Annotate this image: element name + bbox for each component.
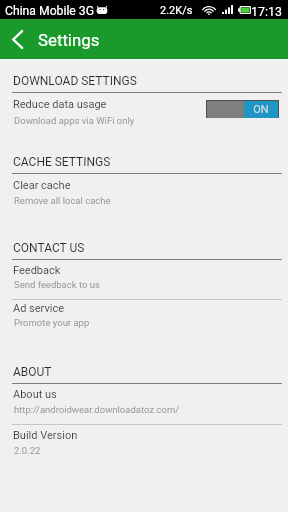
- button[interactable]: Clear cache: [0, 176, 288, 207]
- other: Signal strength: [222, 5, 234, 14]
- staticText: Settings: [38, 30, 100, 50]
- staticText: ON: [253, 103, 269, 116]
- staticText: 2.2K/s: [160, 4, 193, 17]
- staticText: ABOUT: [13, 365, 52, 379]
- button[interactable]: Ad service: [0, 300, 288, 338]
- other: Wi-Fi: [203, 5, 215, 15]
- staticText: 2.0.22: [14, 445, 41, 456]
- staticText: Feedback: [13, 264, 61, 277]
- button[interactable]: Build Version: [0, 424, 288, 462]
- other: Battery full: [238, 6, 251, 14]
- staticText: Build Version: [13, 429, 78, 442]
- staticText: China Mobile 3G: [5, 4, 94, 18]
- button[interactable]: Reduce data usage, on: [206, 100, 279, 118]
- staticText: http://androidwear.downloadatoz.com/: [14, 404, 180, 415]
- staticText: Remove all local cache: [14, 195, 111, 206]
- staticText: Download apps via WiFi only: [14, 115, 135, 126]
- staticText: Ad service: [13, 302, 65, 315]
- button[interactable]: Navigate up: [4, 19, 30, 59]
- staticText: Reduce data usage: [13, 98, 107, 111]
- button[interactable]: Feedback: [0, 261, 288, 299]
- other: Android: [96, 6, 108, 14]
- staticText: Send feedback to us: [14, 279, 100, 290]
- staticText: Promote your app: [14, 317, 90, 328]
- staticText: CACHE SETTINGS: [13, 155, 111, 169]
- button[interactable]: Reduce data usage: [0, 94, 288, 126]
- staticText: DOWNLOAD SETTINGS: [13, 74, 137, 88]
- button[interactable]: About us: [0, 385, 288, 423]
- staticText: 17:13: [251, 4, 282, 19]
- staticText: Clear cache: [13, 179, 71, 192]
- staticText: About us: [13, 388, 57, 401]
- staticText: CONTACT US: [13, 241, 85, 255]
